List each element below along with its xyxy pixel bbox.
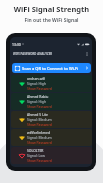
staticText: wififorlinkmed bbox=[27, 130, 51, 135]
staticText: Show Password bbox=[27, 104, 52, 109]
staticText: WIFI PASSWORD ANALYZER bbox=[13, 52, 53, 56]
staticText: 13:30 bbox=[12, 42, 21, 47]
staticText: SOLOLTER bbox=[27, 148, 44, 153]
staticText: Signal: High bbox=[27, 99, 47, 104]
staticText: Signal: Medium bbox=[27, 135, 52, 140]
staticText: Show Password bbox=[27, 140, 52, 145]
staticText: Ahmed 5 Lite bbox=[27, 112, 48, 117]
staticText: Show Password bbox=[27, 86, 52, 91]
staticText: andsen-wifi bbox=[27, 76, 46, 81]
button[interactable]: wififorlinkmed bbox=[11, 129, 92, 146]
button[interactable]: Ahmed 5 Lite bbox=[11, 111, 92, 128]
button[interactable]: andsen-wifi bbox=[11, 75, 92, 92]
staticText: Signal: Medium bbox=[27, 117, 52, 122]
staticText: Ahmed Rabiu bbox=[27, 94, 49, 99]
button[interactable]: Ahmed Rabiu bbox=[11, 93, 92, 110]
staticText: Show Password bbox=[27, 122, 52, 127]
button[interactable]: SOLOLTER bbox=[11, 147, 92, 164]
staticText: Show Password bbox=[27, 158, 52, 163]
button[interactable]: Scan a QR to Connect to Wi-Fi bbox=[12, 63, 91, 73]
staticText: Signal: Low bbox=[27, 153, 45, 158]
staticText: Scan a QR to Connect to Wi-Fi bbox=[22, 66, 79, 71]
staticText: WiFi Signal Strength bbox=[0, 4, 103, 14]
staticText: Signal: High bbox=[27, 81, 47, 86]
staticText: Fin out the WiFi Signal bbox=[0, 17, 103, 24]
button[interactable]: More options bbox=[84, 51, 90, 57]
